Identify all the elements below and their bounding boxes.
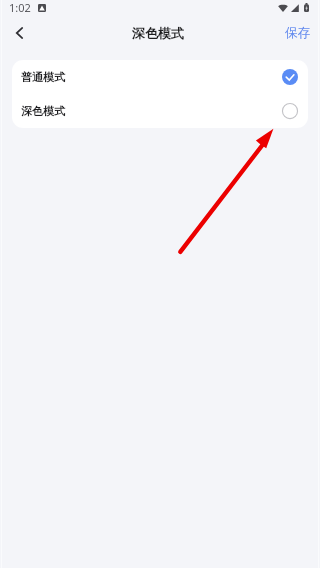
- button[interactable]: 保存: [274, 17, 320, 51]
- staticText: 深色模式: [132, 25, 184, 41]
- staticText: 保存: [285, 25, 310, 41]
- staticText: 1:02: [9, 0, 31, 15]
- button[interactable]: 深色模式: [12, 94, 308, 128]
- staticText: 深色模式: [21, 104, 65, 118]
- staticText: 普通模式: [21, 70, 65, 84]
- button[interactable]: 普通模式: [12, 60, 308, 94]
- button[interactable]: Back: [0, 15, 38, 52]
